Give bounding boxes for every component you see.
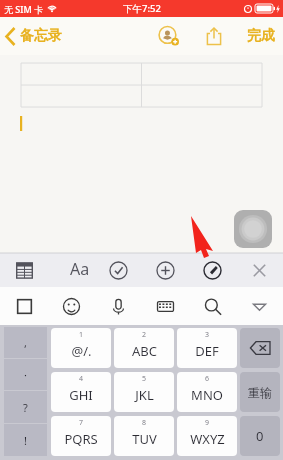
button[interactable]: Sogou input: [0, 287, 48, 325]
button[interactable]: 1: [51, 328, 111, 368]
button[interactable]: Voice input: [95, 287, 142, 325]
staticText: ·: [24, 367, 27, 382]
button[interactable]: 8: [114, 416, 174, 456]
staticText: MNO: [191, 386, 223, 404]
staticText: 2: [142, 330, 147, 340]
staticText: WXYZ: [190, 430, 225, 448]
staticText: TUV: [132, 430, 157, 448]
button[interactable]: 3: [177, 328, 237, 368]
staticText: 完成: [247, 27, 275, 45]
button[interactable]: Keyboard: [142, 287, 189, 325]
staticText: !: [24, 433, 27, 448]
button[interactable]: ?: [4, 391, 47, 423]
staticText: 3: [205, 330, 210, 340]
button[interactable]: Backspace: [240, 328, 280, 368]
staticText: 0: [256, 427, 264, 445]
staticText: JKL: [135, 386, 154, 404]
button[interactable]: Close: [236, 253, 283, 287]
staticText: 7: [79, 418, 84, 428]
staticText: 9: [205, 418, 210, 428]
button[interactable]: Format text: [48, 253, 95, 287]
button[interactable]: Draw: [189, 253, 236, 287]
button[interactable]: 4: [51, 372, 111, 412]
staticText: 无 SIM 卡: [4, 3, 44, 15]
staticText: 5: [142, 374, 147, 384]
staticText: @/.: [71, 342, 92, 360]
staticText: 6: [205, 374, 210, 384]
button[interactable]: Share: [204, 26, 224, 46]
button[interactable]: 7: [51, 416, 111, 456]
staticText: 8: [142, 418, 147, 428]
button[interactable]: ,: [4, 327, 47, 358]
button[interactable]: 2: [114, 328, 174, 368]
staticText: 1: [79, 330, 84, 340]
button[interactable]: 备忘录: [6, 27, 62, 45]
button[interactable]: 重输: [240, 372, 280, 412]
button[interactable]: 9: [177, 416, 237, 456]
button[interactable]: Add: [142, 253, 189, 287]
staticText: 重输: [248, 385, 272, 400]
button[interactable]: AssistiveTouch: [234, 210, 272, 248]
staticText: ?: [23, 400, 28, 415]
staticText: Aa: [70, 258, 90, 280]
button[interactable]: Checklist: [95, 253, 142, 287]
button[interactable]: Search: [189, 287, 236, 325]
staticText: ,: [24, 335, 27, 350]
staticText: 下午7:52: [123, 2, 161, 15]
staticText: ABC: [132, 342, 157, 360]
button[interactable]: Table: [0, 253, 48, 287]
button[interactable]: !: [4, 424, 47, 456]
button[interactable]: 6: [177, 372, 237, 412]
button[interactable]: Hide keyboard: [236, 287, 283, 325]
staticText: DEF: [195, 342, 219, 360]
button[interactable]: ·: [4, 359, 47, 390]
staticText: 4: [79, 374, 84, 384]
staticText: GHI: [69, 386, 93, 404]
button[interactable]: 完成: [247, 27, 275, 45]
button[interactable]: Emoji: [48, 287, 95, 325]
staticText: PQRS: [64, 430, 98, 448]
button[interactable]: 0: [240, 416, 280, 456]
button[interactable]: Add person: [158, 25, 180, 47]
button[interactable]: 5: [114, 372, 174, 412]
staticText: 备忘录: [20, 27, 62, 45]
